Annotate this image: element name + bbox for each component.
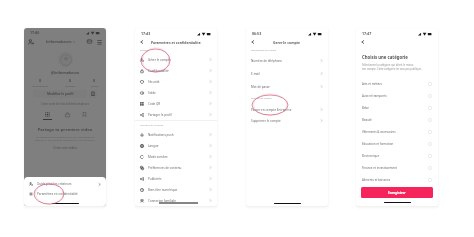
staticText: Arts et métiers: [362, 82, 382, 86]
button[interactable]: Connexion familiale: [135, 195, 217, 206]
button[interactable]: Tab 2: [82, 112, 87, 117]
button[interactable]: Enregistrer: [361, 187, 433, 198]
button[interactable]: Bookmark: [89, 90, 97, 98]
button[interactable]: Outils pour les créateurs: [24, 179, 106, 189]
button[interactable]: Modifier le profil: [33, 90, 87, 98]
button[interactable]: Préférences de contenu: [135, 162, 217, 173]
button[interactable]: Partager le profil: [135, 109, 217, 120]
staticText: J'aime: [91, 84, 98, 87]
staticText: Confidentialité: [148, 69, 169, 73]
button[interactable]: Tab 0: [43, 112, 52, 120]
button[interactable]: Publicités: [135, 173, 217, 184]
button[interactable]: E-mail: [246, 67, 328, 80]
button[interactable]: Electronique: [356, 150, 438, 162]
button[interactable]: Back: [139, 39, 145, 45]
button[interactable]: Paramètres et confidentialité: [24, 189, 106, 199]
staticText: 17:46: [30, 30, 40, 35]
button[interactable]: Numéro de téléphone: [246, 54, 328, 67]
staticText: Partager le profil: [148, 113, 172, 117]
staticText: Gerer le compte: [273, 40, 301, 45]
staticText: @lethemakeuro: [24, 70, 106, 75]
staticText: Informations du compte: [251, 49, 277, 52]
button[interactable]: Passer en compte Entreprise: [246, 104, 328, 115]
button[interactable]: Mot de passe: [246, 80, 328, 93]
staticText: Paramètres et confidentialité: [37, 192, 78, 196]
staticText: Notifications push: [148, 133, 174, 137]
button[interactable]: Menu: [97, 39, 102, 44]
button[interactable]: Solde: [135, 87, 217, 98]
staticText: Enregistrer: [388, 191, 406, 195]
button[interactable]: Arts et métiers: [356, 78, 438, 90]
staticText: Vêtements & accessoires: [362, 130, 396, 134]
staticText: 0: [69, 78, 72, 83]
staticText: Outils pour les créateurs: [37, 182, 72, 186]
staticText: Abonnements: [32, 84, 49, 87]
staticText: Electronique: [362, 154, 380, 158]
staticText: Numéro de téléphone: [251, 59, 283, 63]
button[interactable]: Supprimer le compte: [246, 115, 328, 126]
staticText: Préférences de contenu: [148, 166, 182, 170]
staticText: Beauté: [362, 118, 372, 122]
staticText: Supprimer le compte: [251, 119, 281, 123]
button[interactable]: Finance et investissement: [356, 162, 438, 174]
staticText: 0: [39, 78, 42, 83]
staticText: Modifier le profil: [47, 92, 74, 96]
button[interactable]: Back: [360, 39, 366, 45]
staticText: Auto et transports: [362, 94, 387, 98]
staticText: Connexion familiale: [148, 199, 176, 203]
staticText: 17:43: [141, 31, 151, 36]
button[interactable]: Confidentialité: [135, 65, 217, 76]
staticText: Bebe: [362, 106, 369, 110]
button[interactable]: Gérer le compte: [135, 54, 217, 65]
button[interactable]: Vêtements & accessoires: [356, 126, 438, 138]
button[interactable]: Sécurité: [135, 76, 217, 87]
staticText: Mode sombre: [148, 155, 168, 159]
button[interactable]: Add friends: [28, 39, 34, 45]
button[interactable]: Notifications push: [135, 129, 217, 140]
staticText: Sécurité: [148, 80, 160, 84]
staticText: Solde: [148, 91, 156, 95]
staticText: 17:47: [362, 31, 372, 36]
staticText: Education et formation: [362, 142, 394, 146]
staticText: E-mail: [251, 72, 260, 76]
button[interactable]: Tab 1: [65, 112, 70, 117]
button[interactable]: Langue: [135, 140, 217, 151]
staticText: Abonnés: [65, 84, 76, 87]
staticText: Bien-être numérique: [148, 188, 178, 192]
button[interactable]: Bebe: [356, 102, 438, 114]
button[interactable]: Beauté: [356, 114, 438, 126]
staticText: Code QR: [148, 102, 161, 106]
staticText: Aliments et boissons: [362, 178, 391, 182]
staticText: 06:53: [252, 31, 262, 36]
staticText: Contrôle du compte: [251, 97, 272, 100]
button[interactable]: Bien-être numérique: [135, 184, 217, 195]
staticText: Langue: [148, 144, 159, 148]
staticText: Finance et investissement: [362, 166, 398, 170]
staticText: Les vidéos que tu publieras sur ton comp…: [24, 135, 106, 142]
staticText: Gérer le compte: [148, 58, 171, 62]
button[interactable]: Auto et transports: [356, 90, 438, 102]
staticText: Sélectionne la catégorie qui décrit le m…: [362, 63, 422, 71]
button[interactable]: Code QR: [135, 98, 217, 109]
button[interactable]: Mode sombre: [135, 151, 217, 162]
button[interactable]: Education et formation: [356, 138, 438, 150]
staticText: Partage ta premiere video: [24, 127, 106, 133]
button[interactable]: Aliments et boissons: [356, 174, 438, 186]
button[interactable]: Back: [250, 39, 256, 45]
staticText: lethemakeuro: [46, 39, 72, 44]
staticText: CONTENU ET ACTIVITE: [140, 124, 164, 127]
staticText: Creez votre lien bio.link/lethemakeuro: [24, 102, 106, 106]
staticText: Creer une video: [24, 146, 106, 150]
staticText: Publicités: [148, 177, 162, 181]
button[interactable]: Shop: [87, 39, 92, 44]
staticText: 0: [93, 78, 96, 83]
staticText: Passer en compte Entreprise: [251, 108, 292, 112]
staticText: Parametres et confidentialite: [151, 40, 201, 45]
staticText: COMPTE: [140, 49, 149, 52]
staticText: Mot de passe: [251, 85, 270, 89]
staticText: Choisis une catégorie: [362, 54, 408, 60]
